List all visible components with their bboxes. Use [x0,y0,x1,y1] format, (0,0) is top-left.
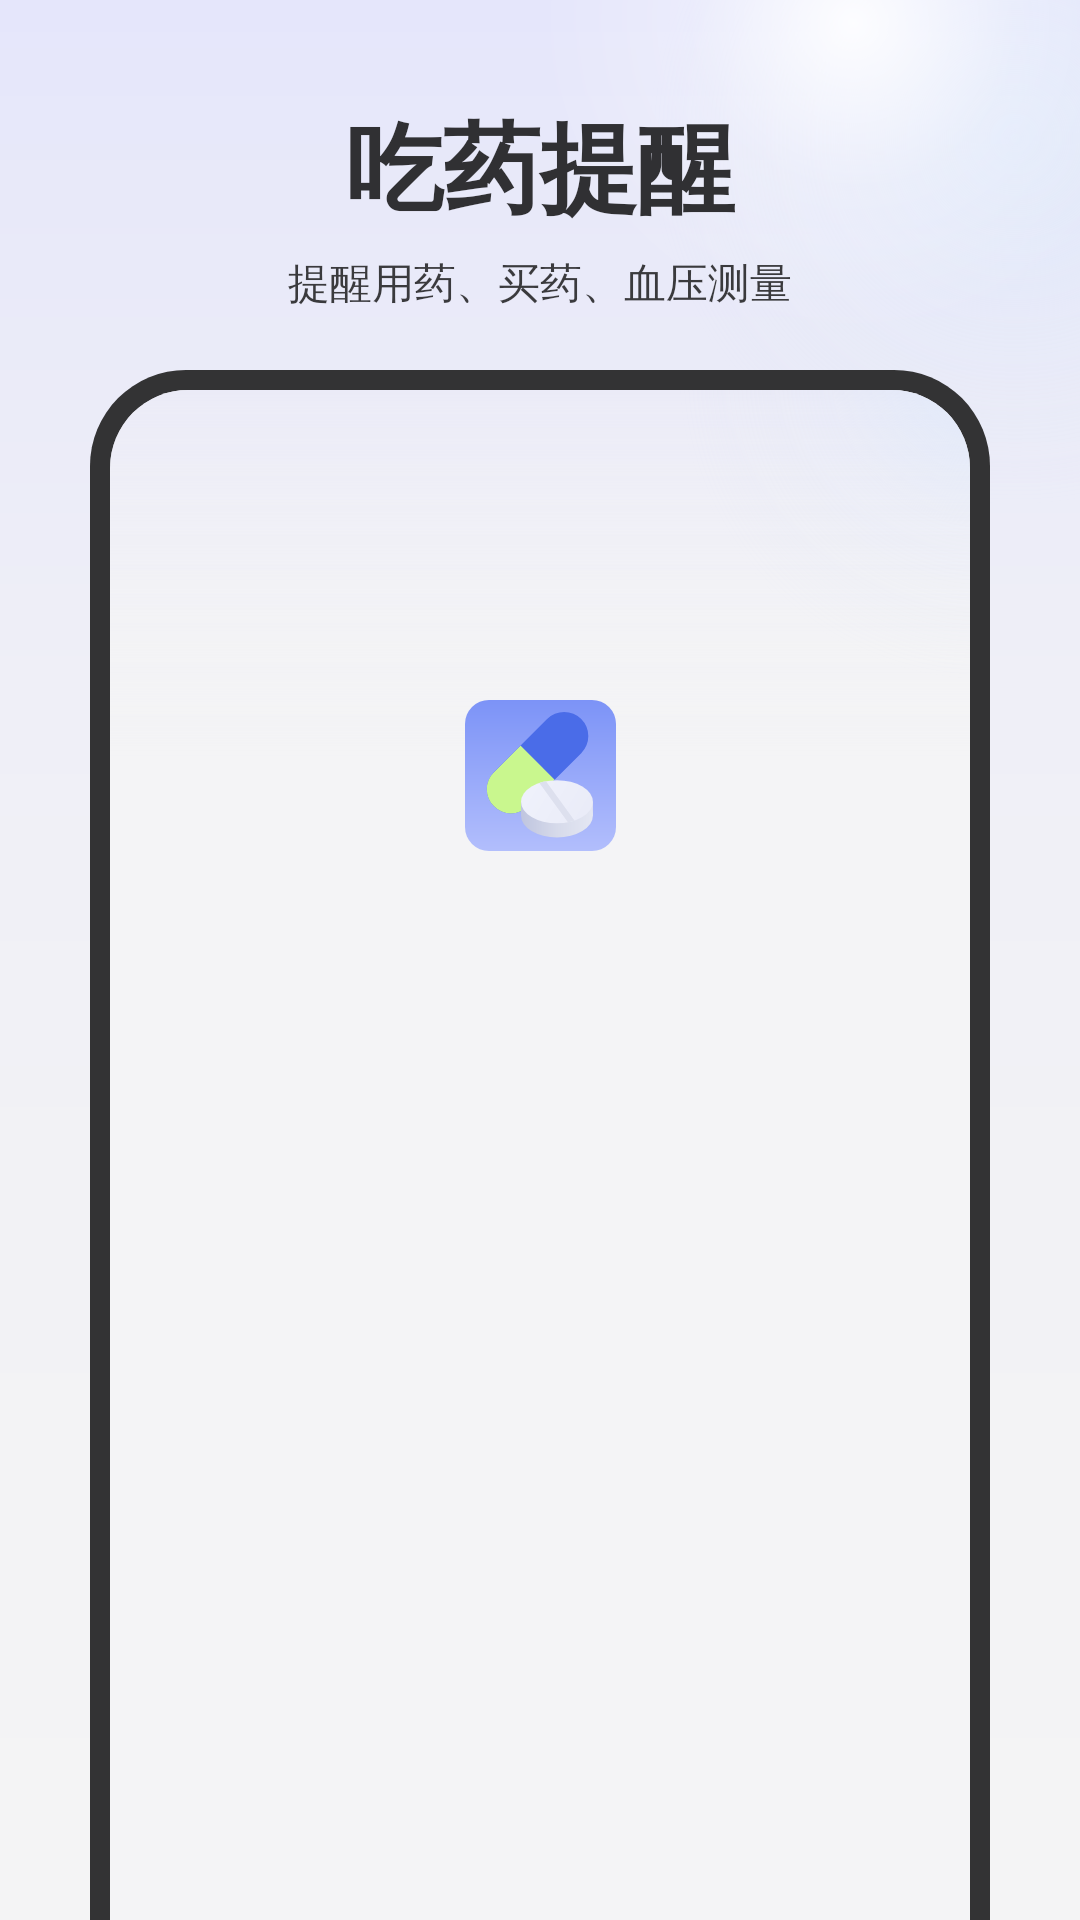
staticText: 提醒用药、买药、血压测量 [288,258,792,311]
button[interactable]: 吃药提醒 app icon [465,700,616,851]
staticText: 吃药提醒 [346,110,734,232]
